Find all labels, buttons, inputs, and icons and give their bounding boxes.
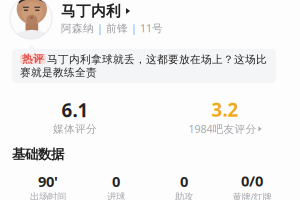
- staticText: 0: [180, 171, 188, 191]
- staticText: 0: [112, 171, 120, 191]
- button[interactable]: 1984吧友评分: [188, 122, 261, 136]
- staticText: 90': [38, 171, 58, 191]
- staticText: 1984吧友评分: [188, 122, 256, 136]
- staticText: 赛就是教练全责: [20, 66, 97, 79]
- staticText: 助攻: [175, 191, 193, 200]
- staticText: 媒体评分: [53, 122, 97, 135]
- staticText: 进球: [107, 191, 125, 200]
- staticText: 0/0: [241, 171, 263, 190]
- staticText: 马丁内利: [61, 2, 121, 20]
- staticText: 热评: [22, 52, 44, 65]
- staticText: 阿森纳 | 前锋 | 11号: [61, 21, 163, 35]
- staticText: 6.1: [61, 97, 88, 122]
- staticText: 马丁内利拿球就丢，这都要放在场上？这场比: [47, 53, 267, 66]
- staticText: 3.2: [211, 97, 238, 122]
- button[interactable]: 马丁内利: [61, 2, 130, 20]
- staticText: 基础数据: [12, 146, 64, 162]
- staticText: 出场时间: [30, 191, 66, 200]
- staticText: 黄牌/红牌: [232, 190, 271, 200]
